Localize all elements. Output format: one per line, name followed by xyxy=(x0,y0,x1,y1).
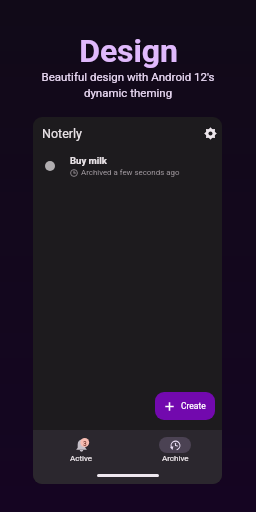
staticText: Archived a few seconds ago xyxy=(81,168,180,177)
staticText: Beautiful design with Android 12's dynam… xyxy=(41,70,215,99)
staticText: Active xyxy=(70,454,93,463)
button[interactable]: Settings xyxy=(199,122,222,145)
staticText: Archive xyxy=(162,454,189,463)
button[interactable]: Create xyxy=(155,392,215,420)
staticText: Create xyxy=(181,401,206,411)
button[interactable]: Buy milk xyxy=(33,149,222,182)
staticText: Buy milk xyxy=(70,155,107,166)
button[interactable]: 3 xyxy=(65,437,97,463)
staticText: Noterly xyxy=(42,126,82,141)
staticText: Design xyxy=(79,32,178,70)
button[interactable]: Archive xyxy=(159,437,191,463)
staticText: 3 xyxy=(83,440,87,448)
